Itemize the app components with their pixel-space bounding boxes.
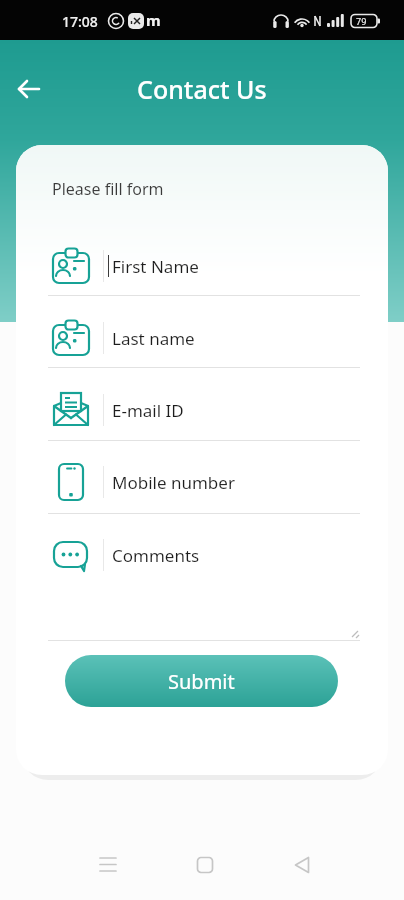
staticText: Last name	[112, 327, 195, 350]
staticText: m	[146, 10, 161, 30]
staticText: Please fill form	[52, 178, 164, 200]
button[interactable]: E-mail ID	[46, 384, 356, 436]
button[interactable]: Mobile number	[46, 456, 356, 508]
staticText: 79	[356, 15, 367, 27]
staticText: Comments	[112, 544, 200, 567]
staticText: Submit	[168, 668, 235, 695]
button[interactable]	[282, 845, 322, 885]
button[interactable]: Submit	[65, 655, 338, 707]
button[interactable]: Comments	[46, 529, 356, 581]
button[interactable]	[10, 70, 48, 108]
button[interactable]	[88, 845, 128, 885]
staticText: Mobile number	[112, 471, 235, 494]
staticText: First Name	[112, 255, 199, 278]
staticText: E-mail ID	[112, 399, 184, 422]
button[interactable]: First Name	[46, 240, 356, 292]
staticText: Contact Us	[137, 72, 267, 106]
staticText: 17:08	[62, 12, 98, 31]
button[interactable]: Last name	[46, 312, 356, 364]
button[interactable]	[185, 845, 225, 885]
